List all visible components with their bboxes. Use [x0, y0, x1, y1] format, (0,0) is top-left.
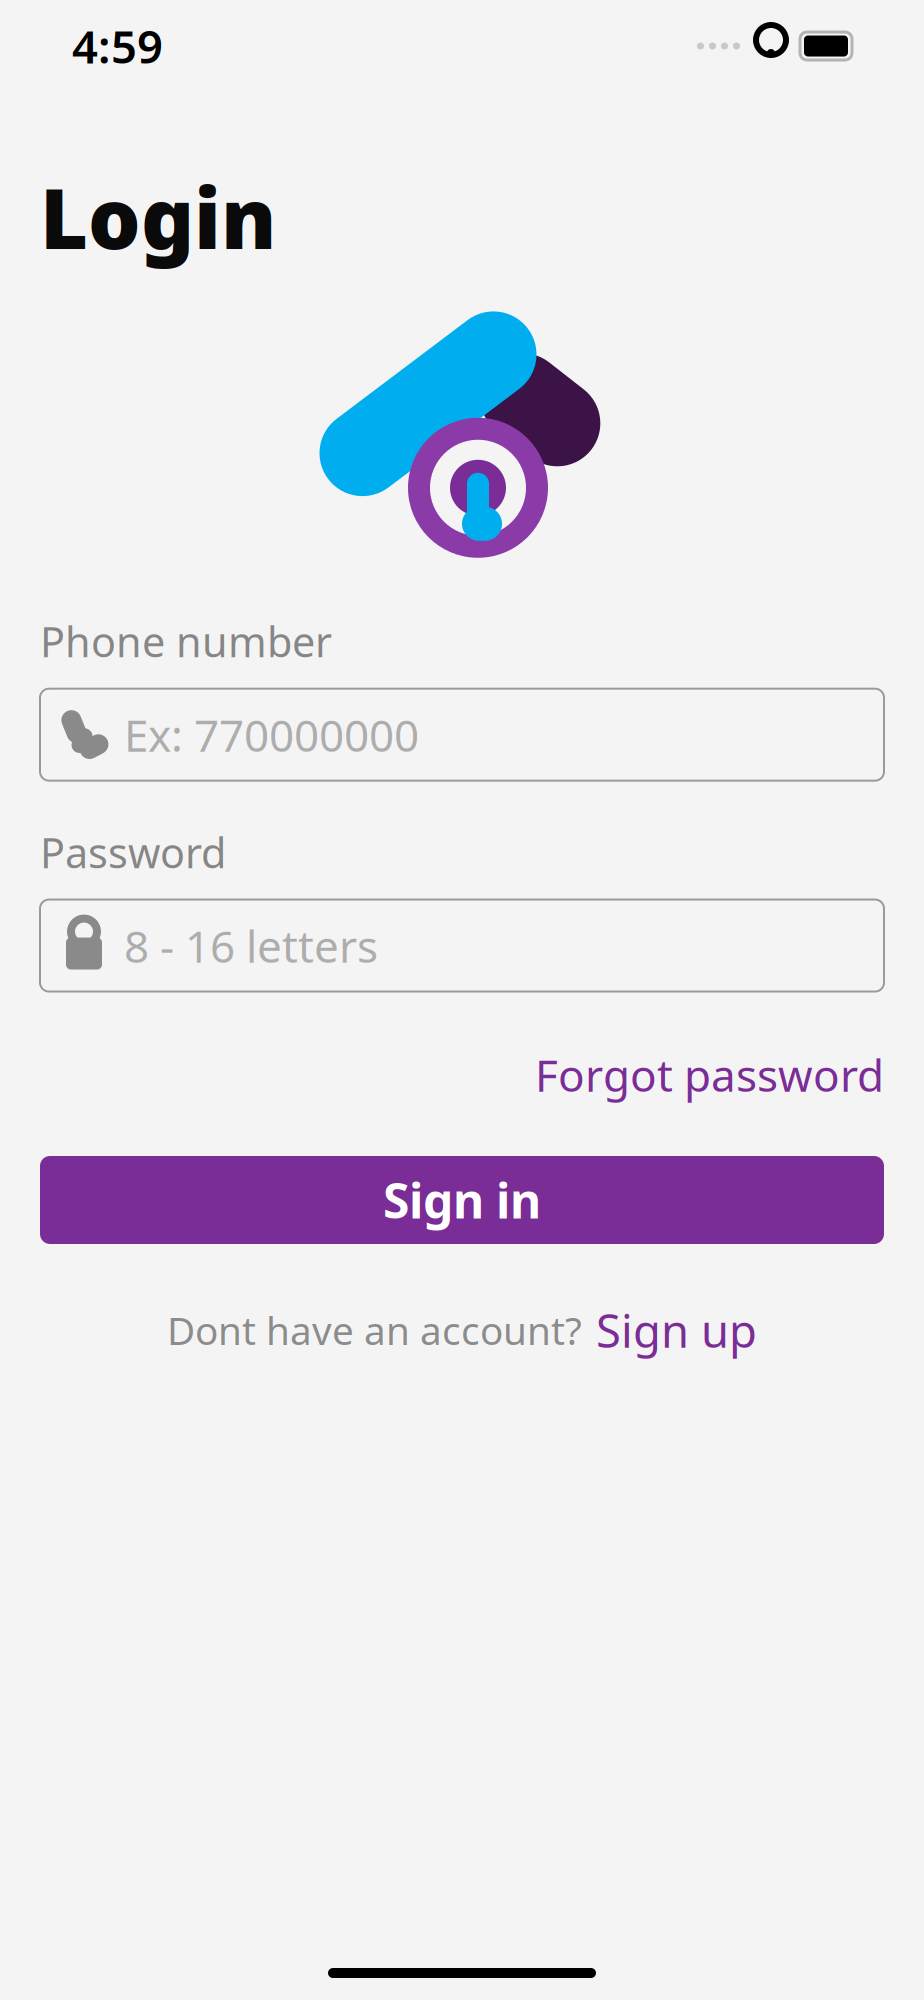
staticText: Dont have an account?: [167, 1304, 582, 1356]
button[interactable]: Forgot password: [535, 1046, 884, 1104]
staticText: Sign in: [383, 1168, 541, 1232]
staticText: Forgot password: [535, 1046, 884, 1104]
staticText: Ex: 770000000: [124, 705, 419, 764]
staticText: 8 - 16 letters: [124, 916, 378, 975]
button[interactable]: Sign up: [596, 1300, 757, 1360]
staticText: 4:59: [72, 16, 163, 76]
staticText: Phone number: [40, 614, 332, 669]
button[interactable]: Sign in: [40, 1156, 884, 1244]
staticText: Login: [40, 162, 276, 272]
staticText: Sign up: [596, 1300, 757, 1360]
staticText: Password: [40, 825, 226, 880]
